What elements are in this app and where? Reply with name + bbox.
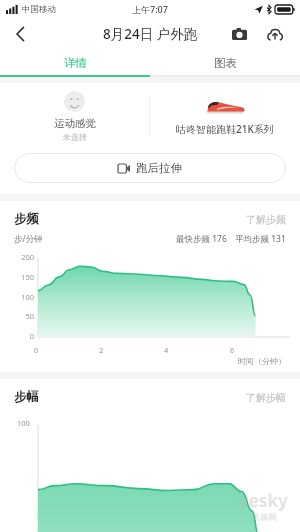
button[interactable]: 咕咚智能跑鞋21K系列 xyxy=(150,83,300,149)
staticText: 100 xyxy=(21,292,34,302)
staticText: 咕咚智能跑鞋21K系列 xyxy=(176,122,274,136)
staticText: 0 xyxy=(29,331,34,341)
staticText: 最快步频 176 xyxy=(176,233,227,245)
button[interactable]: Camera xyxy=(224,19,254,49)
staticText: 8月24日 户外跑 xyxy=(103,25,198,43)
staticText: 详情 xyxy=(64,56,87,70)
staticText: 上午7:07 xyxy=(132,3,168,15)
staticText: 图表 xyxy=(214,56,237,70)
staticText: 平均步频 131 xyxy=(235,233,286,245)
button[interactable]: 跑后拉伸 xyxy=(14,153,286,183)
button[interactable]: Upload xyxy=(260,19,290,49)
staticText: 步频 xyxy=(14,211,39,227)
staticText: 150 xyxy=(21,272,34,282)
staticText: 步/分钟 xyxy=(14,233,43,245)
staticText: 中国移动 xyxy=(22,4,56,15)
staticText: 200 xyxy=(21,252,34,262)
staticText: 了解步幅 xyxy=(246,391,286,404)
staticText: yesky xyxy=(239,489,288,512)
button[interactable]: Back xyxy=(0,18,40,50)
button[interactable]: 运动感觉 xyxy=(0,83,149,149)
staticText: 2 xyxy=(99,345,104,355)
staticText: 运动感觉 xyxy=(54,117,96,130)
staticText: 0 xyxy=(34,345,39,355)
staticText: 100 xyxy=(17,418,30,428)
staticText: 未选择 xyxy=(63,132,87,142)
staticText: 步幅 xyxy=(14,389,39,405)
button[interactable]: 图表 xyxy=(150,50,300,75)
staticText: 跑后拉伸 xyxy=(136,161,182,175)
staticText: 4 xyxy=(164,345,169,355)
staticText: 6 xyxy=(230,345,235,355)
staticText: 50 xyxy=(25,311,34,321)
button[interactable]: 详情 xyxy=(0,50,150,75)
staticText: 时间（分钟） xyxy=(238,356,286,366)
button[interactable]: 了解步频 xyxy=(246,213,286,226)
staticText: 了解步频 xyxy=(246,213,286,226)
button[interactable]: 了解步幅 xyxy=(246,391,286,404)
staticText: 天极网 xyxy=(252,512,276,522)
